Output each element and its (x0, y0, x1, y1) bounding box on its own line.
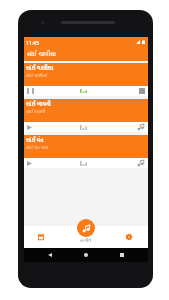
button[interactable]: Pause (27, 88, 34, 94)
staticText: સાંઈ ચાલીસા (26, 64, 54, 73)
staticText: સાંઈ ચાલીસા (26, 73, 47, 78)
staticText: સાંઈ મંત્ર (26, 136, 44, 145)
button[interactable]: Recent apps (112, 248, 132, 262)
button[interactable]: Play (27, 125, 32, 130)
staticText: સાંઈ બાવની (26, 100, 51, 109)
button[interactable]: Play (27, 161, 32, 166)
staticText: સાંઈ ચાલીસા (27, 50, 56, 57)
button[interactable]: Settings (109, 226, 148, 248)
button[interactable]: સાંઈ મંત્ર (24, 135, 148, 168)
staticText: સંગીત (80, 238, 92, 243)
staticText: 11:45 (26, 40, 39, 46)
staticText: સાંઈ મંત્ર જાપ (26, 145, 49, 150)
button[interactable]: Track options (137, 159, 145, 167)
button[interactable]: સાંઈ ચાલીસા (24, 46, 148, 61)
button[interactable]: Calendar (24, 226, 58, 248)
button[interactable]: સાંઈ ચાલીસા (24, 63, 148, 96)
button[interactable]: સાંઈ બાવની (24, 99, 148, 132)
button[interactable]: Play music (77, 219, 95, 237)
button[interactable]: Track options (137, 123, 145, 131)
button[interactable]: Home (76, 248, 96, 262)
button[interactable]: Back (40, 248, 60, 262)
staticText: સાંઈ બાવની (26, 109, 46, 114)
